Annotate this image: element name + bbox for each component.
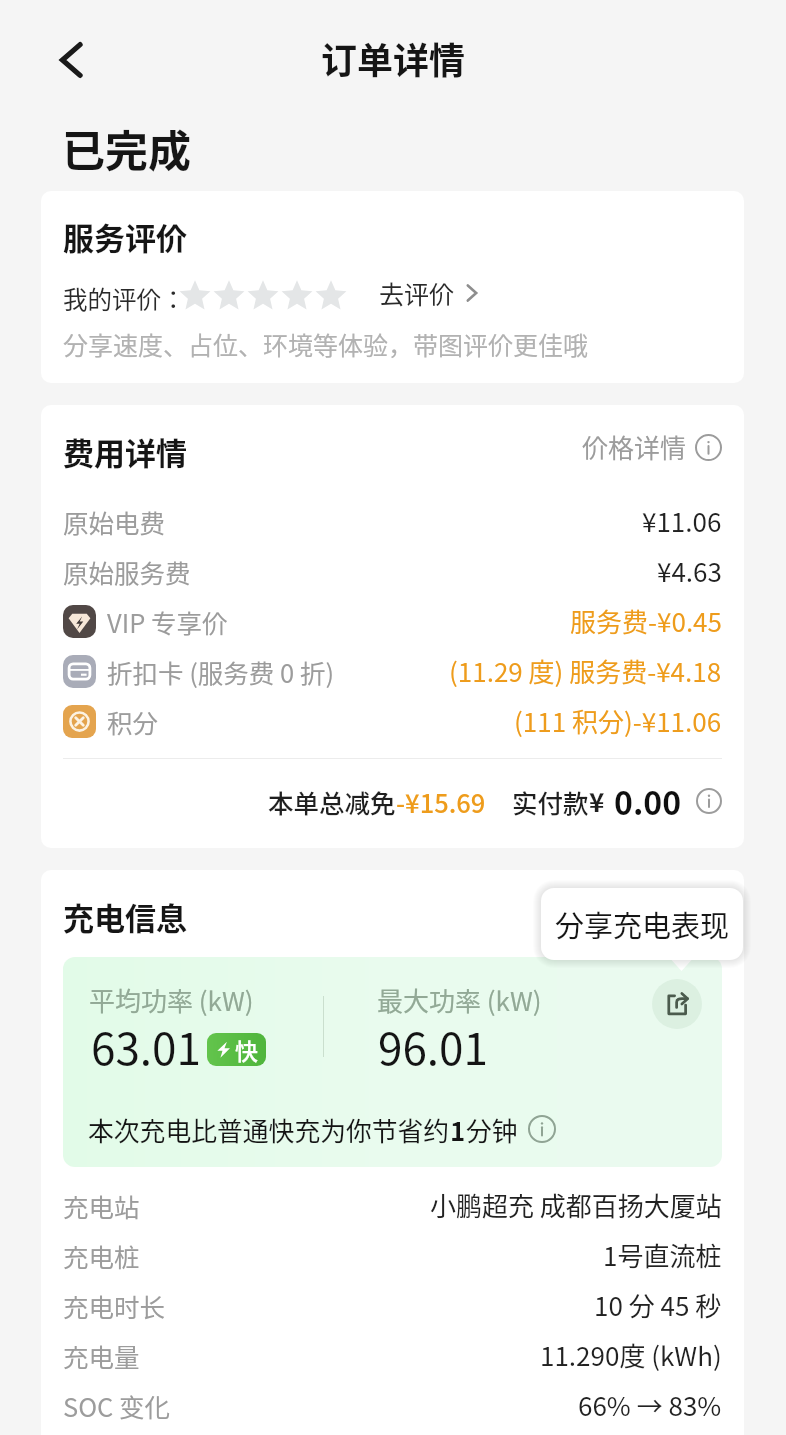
staticText: 充电站 xyxy=(63,1187,140,1224)
staticText: 分享充电表现 xyxy=(555,903,730,945)
staticText: 我的评价： xyxy=(63,281,186,316)
staticText: 订单详情 xyxy=(321,32,466,84)
staticText: ¥4.63 xyxy=(657,552,722,590)
staticText: 服务评价 xyxy=(63,214,187,259)
staticText: 原始电费 xyxy=(63,503,166,540)
staticText: 1 xyxy=(450,1111,466,1148)
staticText: 价格详情 xyxy=(582,428,687,466)
staticText: VIP 专享价 xyxy=(107,603,228,640)
staticText: (111 积分)-¥11.06 xyxy=(514,702,722,740)
staticText: -¥15.69 xyxy=(396,783,486,820)
staticText: 本单总减免 xyxy=(268,783,396,820)
button[interactable]: 分享充电表现 xyxy=(541,888,743,960)
staticText: 原始服务费 xyxy=(63,553,191,590)
staticText: ¥ xyxy=(589,782,605,820)
staticText: 11.290度 (kWh) xyxy=(540,1336,722,1374)
staticText: ¥11.06 xyxy=(642,502,722,540)
button[interactable]: Share xyxy=(652,979,702,1029)
staticText: (11.29 度) 服务费-¥4.18 xyxy=(449,652,722,690)
button[interactable]: Back xyxy=(42,32,98,88)
button[interactable]: 价格详情 xyxy=(582,427,722,467)
staticText: 快 xyxy=(235,1033,258,1066)
staticText: 10 分 45 秒 xyxy=(594,1286,722,1324)
staticText: 分享速度、占位、环境等体验，带图评价更佳哦 xyxy=(63,326,589,362)
staticText: 最大功率 (kW) xyxy=(377,981,542,1019)
staticText: 已完成 xyxy=(62,117,191,179)
staticText: 积分 xyxy=(107,703,159,740)
staticText: 分钟 xyxy=(466,1111,518,1148)
staticText: 1号直流桩 xyxy=(603,1236,722,1274)
staticText: SOC 变化 xyxy=(63,1387,171,1424)
staticText: 服务费-¥0.45 xyxy=(570,602,722,640)
button[interactable]: 去评价 xyxy=(379,273,478,313)
staticText: 本次充电比普通快充为你节省约 xyxy=(88,1111,450,1148)
staticText: 去评价 xyxy=(379,275,455,311)
staticText: 63.01 xyxy=(91,1014,201,1078)
staticText: 66% → 83% xyxy=(578,1386,722,1424)
staticText: 充电量 xyxy=(63,1337,140,1374)
staticText: 充电桩 xyxy=(63,1237,140,1274)
staticText: 实付款 xyxy=(512,783,589,820)
staticText: 96.01 xyxy=(378,1014,488,1078)
staticText: 折扣卡 (服务费 0 折) xyxy=(107,653,335,690)
staticText: 充电时长 xyxy=(63,1287,166,1324)
staticText: 费用详情 xyxy=(63,429,187,474)
staticText: 小鹏超充 成都百扬大厦站 xyxy=(430,1186,722,1224)
staticText: 充电信息 xyxy=(63,894,187,939)
staticText: 平均功率 (kW) xyxy=(89,981,254,1019)
staticText: 0.00 xyxy=(614,778,682,824)
